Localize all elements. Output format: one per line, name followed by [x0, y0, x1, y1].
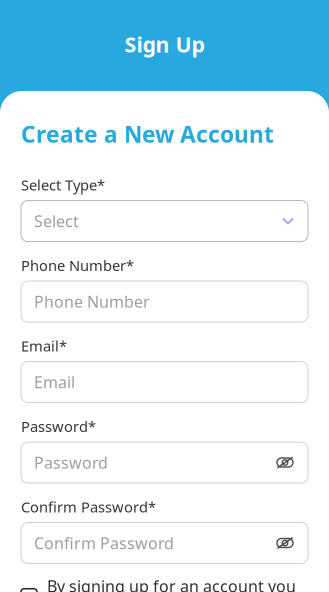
- staticText: Select Type*: [21, 175, 105, 195]
- staticText: Select: [34, 210, 79, 232]
- staticText: Email: [34, 371, 75, 393]
- staticText: Password: [34, 452, 108, 473]
- button[interactable]: Confirm Password: [21, 522, 308, 563]
- staticText: Phone Number*: [21, 256, 134, 275]
- staticText: Email*: [21, 336, 67, 356]
- button[interactable]: Email: [21, 361, 308, 402]
- staticText: Sign Up: [124, 30, 204, 58]
- staticText: By signing up for an account you agree: [47, 575, 296, 592]
- button[interactable]: By signing up for an account you agree: [21, 575, 308, 592]
- staticText: Phone Number: [34, 291, 150, 312]
- staticText: Confirm Password: [34, 532, 174, 554]
- button[interactable]: Phone Number: [21, 281, 308, 322]
- button[interactable]: Password: [21, 442, 308, 483]
- staticText: Confirm Password*: [21, 497, 156, 516]
- staticText: Create a New Account: [21, 119, 274, 149]
- staticText: Password*: [21, 416, 96, 436]
- button[interactable]: Select Type: [21, 201, 308, 242]
